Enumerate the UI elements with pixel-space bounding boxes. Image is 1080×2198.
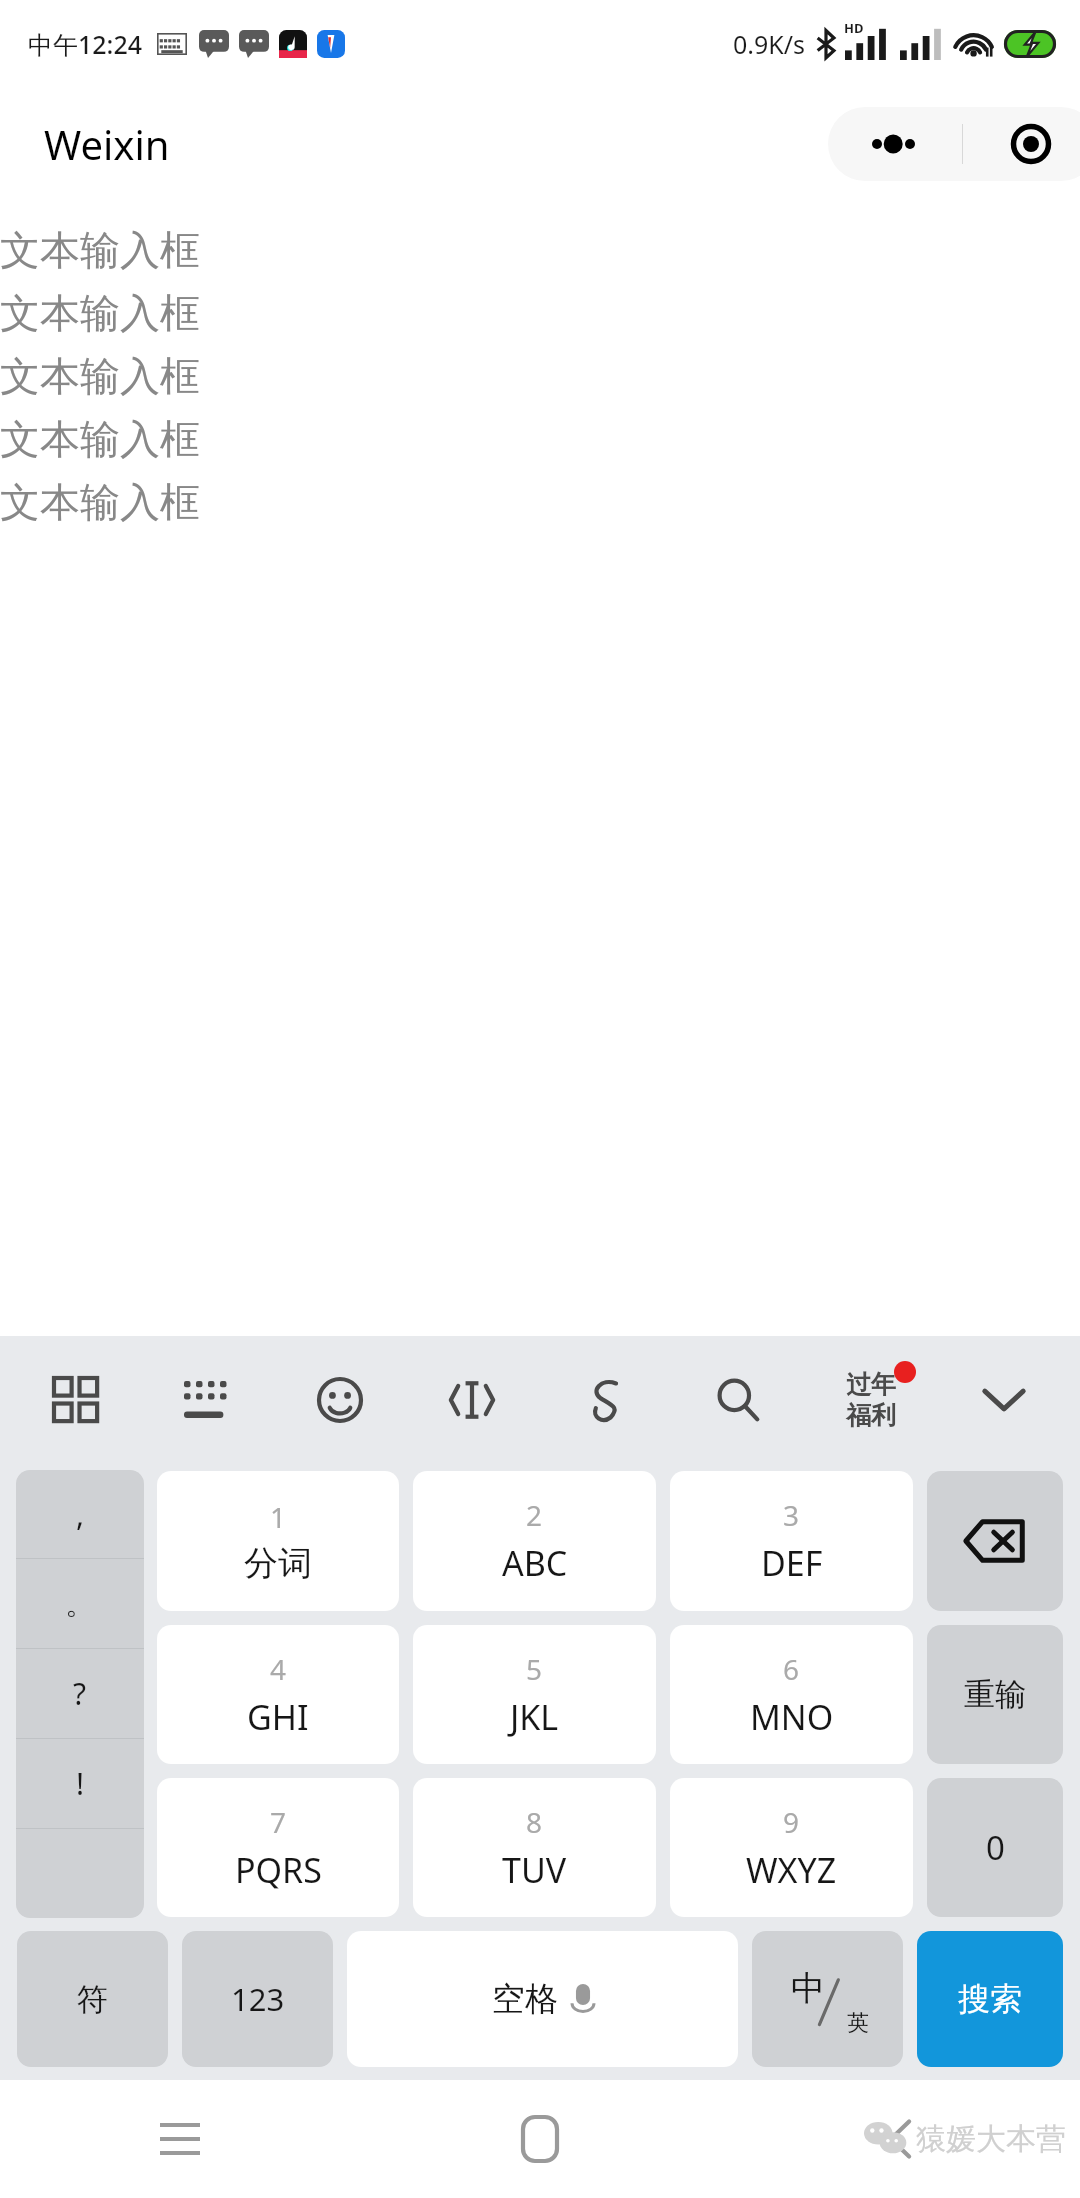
staticText: 9: [783, 1803, 800, 1841]
staticText: !: [76, 1763, 85, 1804]
button[interactable]: Back: [720, 2080, 1080, 2198]
staticText: ?: [73, 1673, 87, 1714]
button[interactable]: 重输: [927, 1625, 1063, 1764]
staticText: 中: [791, 1967, 825, 2010]
button[interactable]: Hide keyboard: [937, 1336, 1070, 1464]
button[interactable]: 123: [182, 1931, 333, 2067]
button[interactable]: !: [16, 1739, 144, 1828]
staticText: 猿媛大本营: [916, 2120, 1066, 2158]
button[interactable]: 3: [670, 1471, 913, 1611]
button[interactable]: 文本输入框: [0, 218, 1080, 281]
button[interactable]: New year benefits: [804, 1336, 937, 1464]
button[interactable]: 空格: [347, 1931, 738, 2067]
staticText: DEF: [761, 1540, 823, 1586]
button[interactable]: 4: [157, 1625, 399, 1764]
staticText: 福利: [846, 1400, 896, 1431]
button[interactable]: ?: [16, 1649, 144, 1738]
button[interactable]: Search: [671, 1336, 804, 1464]
staticText: 文本输入框: [0, 477, 200, 527]
staticText: 3: [783, 1496, 800, 1534]
button[interactable]: 。: [16, 1559, 144, 1648]
staticText: GHI: [247, 1694, 309, 1740]
staticText: TUV: [502, 1847, 567, 1893]
button[interactable]: 8: [413, 1778, 656, 1917]
staticText: 文本输入框: [0, 288, 200, 338]
staticText: 中午12:24: [28, 27, 143, 61]
staticText: 重输: [964, 1675, 1026, 1714]
button[interactable]: 7: [157, 1778, 399, 1917]
staticText: 7: [270, 1803, 287, 1841]
staticText: Weixin: [44, 117, 170, 171]
button[interactable]: Emoji: [274, 1336, 406, 1464]
staticText: 5: [526, 1650, 543, 1688]
button[interactable]: 符: [17, 1931, 168, 2067]
button[interactable]: 5: [413, 1625, 656, 1764]
button[interactable]: 搜索: [917, 1931, 1063, 2067]
button[interactable]: Edit cursor: [406, 1336, 538, 1464]
staticText: PQRS: [235, 1847, 322, 1893]
button[interactable]: Close: [963, 107, 1080, 181]
staticText: 符: [77, 1980, 108, 2019]
staticText: JKL: [510, 1694, 559, 1740]
staticText: 搜索: [958, 1979, 1022, 2019]
button[interactable]: 文本输入框: [0, 470, 1080, 533]
staticText: 6: [783, 1650, 800, 1688]
staticText: 4: [270, 1650, 287, 1688]
button[interactable]: 文本输入框: [0, 281, 1080, 344]
staticText: 1: [270, 1498, 287, 1536]
button[interactable]: Home: [360, 2080, 720, 2198]
staticText: 过年: [846, 1369, 896, 1400]
button[interactable]: 1: [157, 1471, 399, 1611]
staticText: 0: [986, 1825, 1005, 1870]
button[interactable]: Backspace: [927, 1471, 1063, 1611]
staticText: 分词: [244, 1542, 312, 1585]
button[interactable]: Chinese English toggle: [752, 1931, 903, 2067]
button[interactable]: Clipboard: [538, 1336, 671, 1464]
button[interactable]: 0: [927, 1778, 1063, 1917]
button[interactable]: 文本输入框: [0, 407, 1080, 470]
button[interactable]: More: [828, 107, 962, 181]
staticText: 文本输入框: [0, 414, 200, 464]
staticText: 英: [847, 2009, 869, 2037]
staticText: ABC: [502, 1540, 568, 1586]
button[interactable]: Panels: [10, 1336, 142, 1464]
button[interactable]: Recents: [0, 2080, 360, 2198]
staticText: HD: [844, 19, 864, 37]
staticText: 文本输入框: [0, 225, 200, 275]
staticText: 123: [231, 1978, 285, 2020]
button[interactable]: 9: [670, 1778, 913, 1917]
staticText: 空格: [492, 1978, 558, 2020]
staticText: WXYZ: [746, 1847, 837, 1893]
button[interactable]: 文本输入框: [0, 344, 1080, 407]
button[interactable]: 6: [670, 1625, 913, 1764]
staticText: MNO: [750, 1694, 834, 1740]
staticText: 。: [65, 1585, 95, 1623]
button[interactable]: 2: [413, 1471, 656, 1611]
staticText: 0.9K/s: [733, 27, 806, 61]
staticText: 文本输入框: [0, 351, 200, 401]
button[interactable]: Keyboard layout: [142, 1336, 274, 1464]
staticText: 8: [526, 1803, 543, 1841]
button[interactable]: ,: [16, 1470, 144, 1558]
staticText: 2: [526, 1496, 543, 1534]
staticText: ,: [76, 1494, 85, 1535]
